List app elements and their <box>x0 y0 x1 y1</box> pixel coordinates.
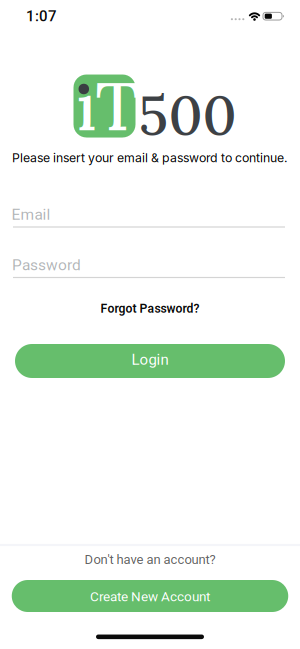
button[interactable]: Forgot Password? <box>80 296 220 320</box>
button[interactable]: Login <box>15 344 285 378</box>
staticText: Login <box>131 351 168 368</box>
staticText: Password <box>12 256 81 274</box>
staticText: ıT <box>76 62 138 149</box>
button[interactable]: Password <box>0 239 300 283</box>
staticText: 500 <box>138 80 236 149</box>
button[interactable]: Create New Account <box>12 580 288 612</box>
staticText: Forgot Password? <box>100 301 199 316</box>
staticText: Please insert your email & password to c… <box>12 150 288 165</box>
staticText: Don't have an account? <box>84 552 215 567</box>
staticText: Email <box>11 205 50 224</box>
staticText: Create New Account <box>90 589 210 605</box>
staticText: 1:07 <box>26 7 57 25</box>
button[interactable]: Email <box>0 188 300 232</box>
